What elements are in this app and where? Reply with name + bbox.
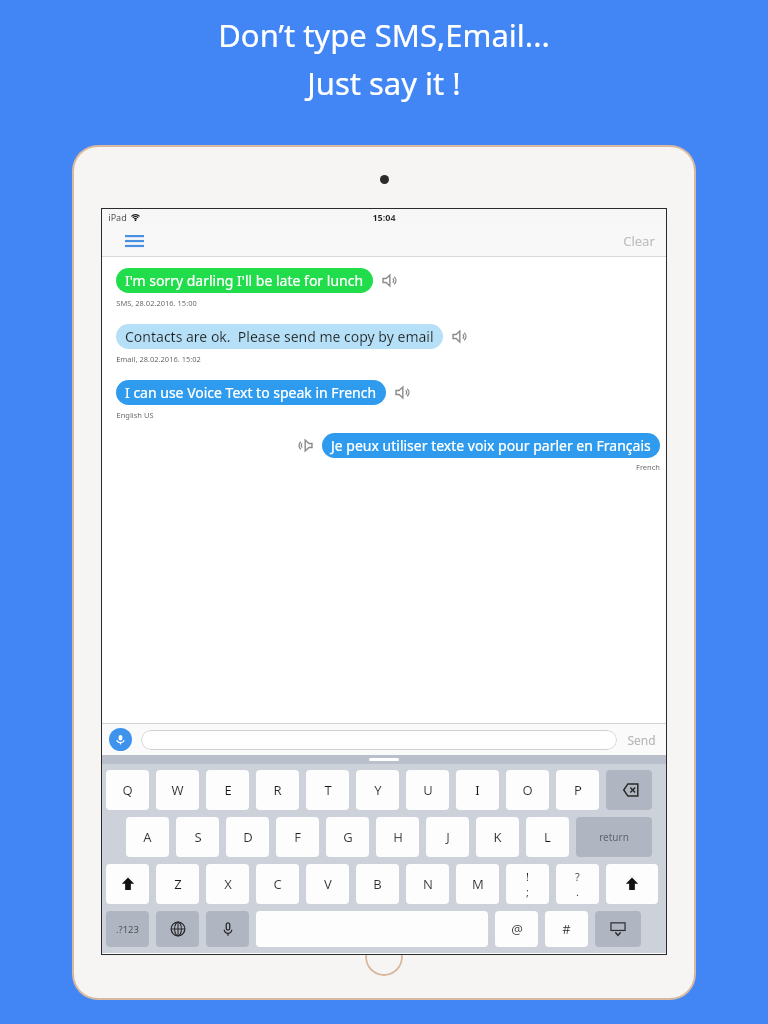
button[interactable]: .?123 [106,911,149,947]
button[interactable]: Play message [296,437,313,454]
button[interactable]: I can use Voice Text to speak in French [116,380,386,405]
button[interactable]: B [356,864,399,904]
button[interactable]: U [406,770,449,810]
staticText: SMS, 28.02.2016. 15:00 [116,298,197,308]
staticText: A [143,828,152,846]
button[interactable]: F [276,817,319,857]
staticText: S [194,828,202,846]
staticText: G [343,828,353,846]
button[interactable]: K [476,817,519,857]
button[interactable]: W [156,770,199,810]
staticText: V [324,875,332,893]
button[interactable]: L [526,817,569,857]
staticText: E [224,781,232,799]
button[interactable]: X [206,864,249,904]
button[interactable]: N [406,864,449,904]
staticText: Clear [623,232,655,250]
button[interactable] [141,730,617,750]
staticText: Contacts are ok. Please send me copy by … [125,327,434,346]
button[interactable]: O [506,770,549,810]
staticText: P [574,781,582,799]
button[interactable]: C [256,864,299,904]
staticText: Q [122,781,133,799]
button[interactable]: Play message [452,328,469,345]
staticText: .?123 [116,923,139,936]
staticText: F [294,828,301,846]
button[interactable]: R [256,770,299,810]
staticText: Z [174,875,182,893]
button[interactable]: Y [356,770,399,810]
button[interactable]: Hide keyboard [595,911,641,947]
staticText: ? . [575,869,580,899]
staticText: I can use Voice Text to speak in French [125,383,377,402]
button[interactable]: Clear [619,229,659,253]
staticText: B [373,875,382,893]
button[interactable]: Shift [606,864,658,904]
staticText: Just say it ! [307,62,461,104]
button[interactable]: Backspace [606,770,652,810]
staticText: H [393,828,403,846]
button[interactable]: S [176,817,219,857]
button[interactable]: ? . [556,864,599,904]
staticText: 15:04 [372,211,396,223]
button[interactable]: ! ; [506,864,549,904]
staticText: O [522,781,533,799]
button[interactable]: Language [156,911,199,947]
staticText: Email, 28.02.2016. 15:02 [116,354,201,364]
button[interactable]: D [226,817,269,857]
button[interactable]: # [545,911,588,947]
staticText: M [472,875,484,893]
staticText: D [243,828,253,846]
button[interactable]: Menu [121,228,147,254]
staticText: C [273,875,282,893]
staticText: # [562,920,571,938]
button[interactable]: Z [156,864,199,904]
staticText: I [475,781,480,799]
button[interactable]: V [306,864,349,904]
button[interactable]: P [556,770,599,810]
button[interactable]: J [426,817,469,857]
button[interactable]: G [326,817,369,857]
button[interactable]: Voice input [109,728,132,751]
staticText: Y [374,781,382,799]
staticText: English US [116,410,154,420]
staticText: T [324,781,332,799]
staticText: J [446,828,450,846]
staticText: R [273,781,282,799]
staticText: K [493,828,502,846]
button[interactable]: Send [624,732,659,748]
button[interactable]: T [306,770,349,810]
button[interactable]: I'm sorry darling I'll be late for lunch [116,268,373,293]
button[interactable]: H [376,817,419,857]
staticText: N [423,875,433,893]
button[interactable]: Play message [382,272,399,289]
staticText: French [636,462,660,472]
staticText: I'm sorry darling I'll be late for lunch [125,271,364,290]
staticText: X [224,875,232,893]
button[interactable]: I [456,770,499,810]
staticText: iPad [108,211,127,223]
button[interactable]: Q [106,770,149,810]
staticText: U [423,781,433,799]
button[interactable]: Je peux utiliser texte voix pour parler … [322,433,660,458]
button[interactable]: Dictation [206,911,249,947]
button[interactable]: E [206,770,249,810]
button[interactable]: return [576,817,652,857]
button[interactable]: A [126,817,169,857]
button[interactable]: M [456,864,499,904]
button[interactable]: Shift [106,864,149,904]
staticText: Je peux utiliser texte voix pour parler … [331,436,651,455]
staticText: @ [511,920,523,938]
staticText: Send [627,732,656,748]
staticText: L [544,828,551,846]
staticText: Don’t type SMS,Email... [218,14,550,56]
button[interactable]: Play message [395,384,412,401]
staticText: W [171,781,184,799]
button[interactable]: @ [495,911,538,947]
button[interactable]: Contacts are ok. Please send me copy by … [116,324,443,349]
staticText: ! ; [526,869,529,899]
staticText: return [599,830,629,844]
